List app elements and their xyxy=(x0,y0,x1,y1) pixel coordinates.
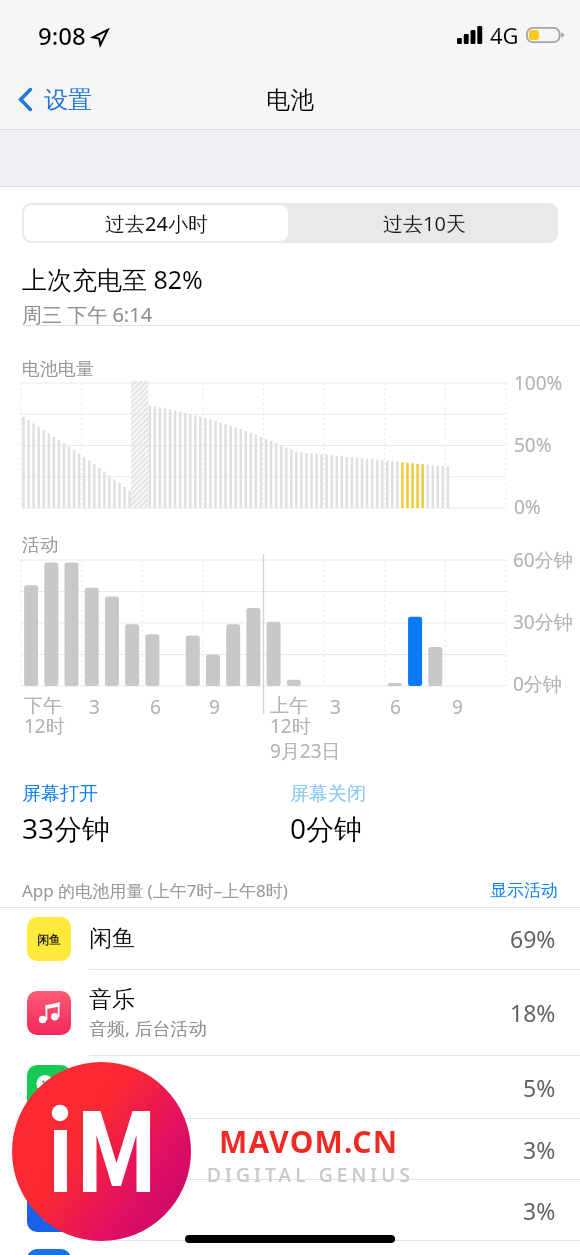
staticText: MAVOM.CN xyxy=(219,1121,399,1162)
staticText: 下午 xyxy=(24,694,62,718)
staticText: 闲鱼 xyxy=(37,932,61,947)
staticText: 上次充电至 82% xyxy=(22,262,203,296)
staticText: 9 xyxy=(452,694,463,720)
staticText: 音乐 xyxy=(89,985,135,1014)
staticText: 3 xyxy=(89,694,100,720)
staticText: 50% xyxy=(514,432,552,458)
staticText: 9:08 xyxy=(38,19,86,52)
staticText: 5% xyxy=(523,1072,556,1103)
staticText: 9 xyxy=(209,694,220,720)
button[interactable]: 5% xyxy=(0,1056,580,1119)
staticText: 活动 xyxy=(22,534,58,557)
button[interactable]: 过去10天 xyxy=(290,203,558,243)
staticText: 6 xyxy=(150,694,161,720)
staticText: 音频, 后台活动 xyxy=(89,1016,207,1041)
staticText: 69% xyxy=(510,923,556,954)
staticText: DIGITAL GENIUS xyxy=(207,1162,415,1188)
staticText: 设置 xyxy=(44,85,92,115)
staticText: 电池 xyxy=(266,85,314,115)
staticText: 0分钟 xyxy=(290,809,363,847)
staticText: 9月23日 xyxy=(270,738,341,764)
staticText: 3% xyxy=(523,1195,556,1226)
button[interactable]: 闲鱼 xyxy=(0,908,580,970)
button[interactable]: 显示活动 xyxy=(490,880,558,901)
button[interactable]: 3% xyxy=(0,1180,580,1241)
staticText: 30分钟 xyxy=(513,609,573,635)
staticText: 电池电量 xyxy=(22,358,94,381)
button[interactable]: 3% xyxy=(0,1119,580,1180)
staticText: 3% xyxy=(523,1134,556,1165)
button[interactable]: 音乐 xyxy=(0,970,580,1056)
staticText: 3 xyxy=(330,694,341,720)
staticText: 100% xyxy=(514,370,563,396)
staticText: 0% xyxy=(514,494,541,520)
staticText: 屏幕打开 xyxy=(22,782,98,806)
staticText: 屏幕关闭 xyxy=(290,782,366,806)
staticText: 12时 xyxy=(24,713,65,739)
button[interactable]: 过去24小时 xyxy=(24,205,288,241)
staticText: 6 xyxy=(390,694,401,720)
staticText: 周三 下午 6:14 xyxy=(22,301,153,328)
button[interactable] xyxy=(0,1241,580,1255)
staticText: 过去24小时 xyxy=(105,210,208,237)
staticText: 0分钟 xyxy=(513,671,562,697)
button[interactable]: 设置 xyxy=(0,72,160,128)
staticText: 上午 xyxy=(270,694,308,718)
staticText: 12时 xyxy=(270,713,311,739)
staticText: App 的电池用量 (上午7时–上午8时) xyxy=(22,879,490,902)
staticText: 过去10天 xyxy=(383,210,466,237)
staticText: 60分钟 xyxy=(513,547,573,573)
staticText: 闲鱼 xyxy=(89,924,135,953)
staticText: 4G xyxy=(490,20,519,50)
staticText: 18% xyxy=(510,997,556,1028)
staticText: 33分钟 xyxy=(22,809,111,847)
